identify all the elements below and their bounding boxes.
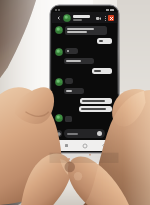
button[interactable]: Home [80,141,89,150]
button[interactable] [64,58,94,64]
button[interactable]: Video call [94,14,102,22]
button[interactable]: Close [108,15,114,21]
button[interactable] [64,88,84,94]
button[interactable] [79,106,112,112]
button[interactable] [80,98,112,104]
button[interactable]: Back [55,14,62,21]
button[interactable] [65,48,78,54]
button[interactable]: Send [107,130,114,137]
button[interactable] [65,116,72,122]
button[interactable]: More options [102,15,108,21]
button[interactable]: Recent apps [62,141,71,150]
button[interactable] [97,38,112,44]
button[interactable] [65,26,107,35]
button[interactable]: Add attachment [55,130,62,137]
button[interactable] [64,129,105,138]
button[interactable] [92,68,112,74]
button[interactable]: Back [99,141,108,150]
button[interactable] [65,78,73,84]
